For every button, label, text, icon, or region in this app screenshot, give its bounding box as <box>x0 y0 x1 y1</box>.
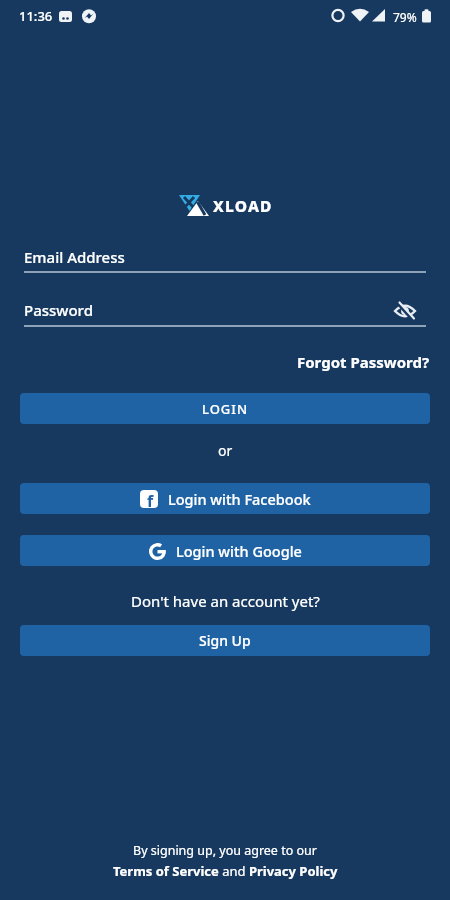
button[interactable]: Terms of Service and Privacy Policy <box>113 862 338 880</box>
staticText: Password <box>24 300 93 320</box>
button[interactable]: Login with Google <box>20 535 430 566</box>
staticText: Login with Google <box>176 541 302 561</box>
button[interactable]: Forgot Password? <box>297 352 430 372</box>
staticText: LOGIN <box>202 400 249 418</box>
staticText: Login with Facebook <box>168 489 311 509</box>
staticText: Don't have an account yet? <box>131 591 320 611</box>
staticText: or <box>218 441 233 460</box>
button[interactable] <box>24 242 426 273</box>
button[interactable]: f <box>20 483 430 514</box>
button[interactable] <box>394 302 416 322</box>
staticText: Email Address <box>24 247 125 267</box>
staticText: 79% <box>393 9 417 25</box>
staticText: Sign Up <box>199 631 251 650</box>
button[interactable]: Sign Up <box>20 625 430 656</box>
staticText: f <box>147 490 154 508</box>
staticText: 11:36 <box>19 7 53 25</box>
button[interactable]: LOGIN <box>20 393 430 424</box>
button[interactable] <box>24 295 426 326</box>
staticText: By signing up, you agree to our <box>133 842 317 859</box>
staticText: XLOAD <box>213 195 273 216</box>
